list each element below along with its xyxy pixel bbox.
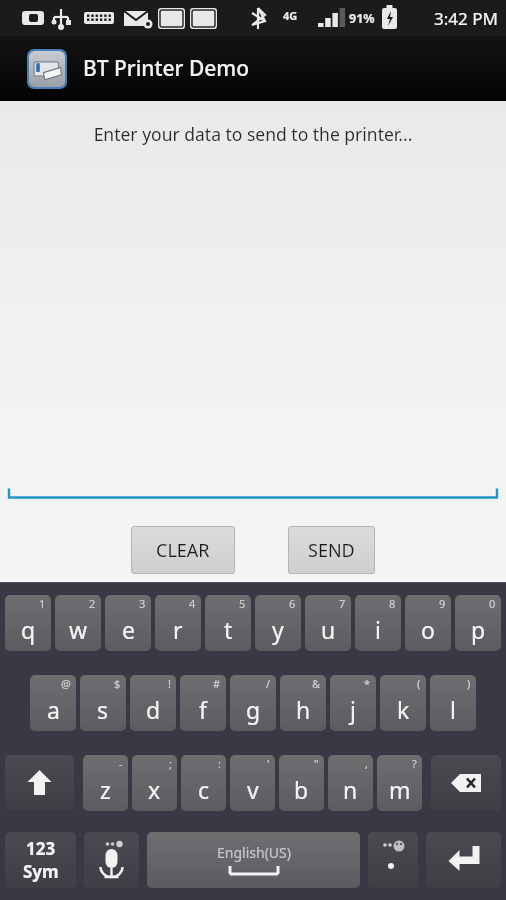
staticText: r <box>173 614 183 645</box>
staticText: c <box>198 774 210 805</box>
staticText: 2 <box>89 596 96 611</box>
staticText: ) <box>467 676 471 691</box>
staticText: t <box>224 614 233 645</box>
staticText: 6 <box>289 596 296 611</box>
staticText: f <box>199 694 207 725</box>
staticText: English(US) <box>217 843 291 862</box>
button[interactable]: ! <box>130 675 176 731</box>
staticText: l <box>450 694 456 725</box>
staticText: " <box>314 756 319 771</box>
button[interactable]: Symbols <box>5 832 76 888</box>
button[interactable]: ? <box>377 755 422 811</box>
staticText: u <box>321 614 336 645</box>
staticText: 4G <box>283 8 298 23</box>
staticText: q <box>21 614 36 645</box>
staticText: a <box>47 694 60 725</box>
staticText: ? <box>412 756 417 771</box>
staticText: v <box>247 774 259 805</box>
button[interactable]: 5 <box>205 595 251 651</box>
button[interactable]: Enter <box>426 832 501 888</box>
button[interactable]: 2 <box>55 595 101 651</box>
button[interactable]: ) <box>430 675 476 731</box>
staticText: e <box>122 614 135 645</box>
staticText: d <box>146 694 161 725</box>
staticText: g <box>246 694 261 725</box>
staticText: k <box>397 694 410 725</box>
button[interactable]: ; <box>132 755 177 811</box>
button[interactable]: 3 <box>105 595 151 651</box>
button[interactable]: Shift <box>5 755 74 811</box>
staticText: $ <box>114 676 121 691</box>
staticText: y <box>272 614 284 645</box>
staticText: o <box>421 614 435 645</box>
staticText: 3:42 PM <box>434 7 498 30</box>
staticText: m <box>389 774 411 805</box>
button[interactable]: ' <box>230 755 275 811</box>
staticText: BT Printer Demo <box>83 54 250 83</box>
staticText: z <box>100 774 111 805</box>
button[interactable]: * <box>330 675 376 731</box>
staticText: , <box>365 756 368 771</box>
staticText: 91% <box>349 10 375 27</box>
button[interactable]: CLEAR <box>131 526 235 574</box>
staticText: * <box>364 676 371 691</box>
button[interactable]: 8 <box>355 595 401 651</box>
button[interactable]: / <box>230 675 276 731</box>
staticText: x <box>148 774 161 805</box>
staticText: h <box>296 694 311 725</box>
button[interactable]: English(US) <box>147 832 360 888</box>
staticText: & <box>312 676 321 691</box>
staticText: : <box>218 756 221 771</box>
staticText: Sym <box>23 860 59 883</box>
staticText: ! <box>168 676 171 691</box>
button[interactable]: 0 <box>455 595 501 651</box>
button[interactable]: Period and emoji <box>368 832 418 888</box>
staticText: i <box>375 614 381 645</box>
button[interactable]: , <box>328 755 373 811</box>
button[interactable]: SEND <box>288 526 375 574</box>
staticText: j <box>350 694 356 725</box>
button[interactable]: Voice input <box>84 832 139 888</box>
button[interactable]: # <box>180 675 226 731</box>
staticText: Enter your data to send to the printer..… <box>0 122 506 146</box>
staticText: 5 <box>239 596 246 611</box>
staticText: 4 <box>189 596 196 611</box>
staticText: n <box>343 774 358 805</box>
staticText: p <box>471 614 486 645</box>
staticText: 1 <box>39 596 46 611</box>
staticText: @ <box>61 676 71 691</box>
button[interactable]: @ <box>30 675 76 731</box>
button[interactable]: 6 <box>255 595 301 651</box>
staticText: ( <box>417 676 421 691</box>
staticText: SEND <box>308 538 355 563</box>
button[interactable]: 1 <box>5 595 51 651</box>
staticText: # <box>213 676 221 691</box>
staticText: 3 <box>139 596 146 611</box>
staticText: 9 <box>439 596 446 611</box>
button[interactable]: $ <box>80 675 126 731</box>
staticText: ' <box>267 756 270 771</box>
button[interactable]: : <box>181 755 226 811</box>
staticText: / <box>266 676 271 691</box>
button[interactable]: ( <box>380 675 426 731</box>
staticText: CLEAR <box>156 538 210 563</box>
button[interactable]: 7 <box>305 595 351 651</box>
button[interactable]: - <box>83 755 128 811</box>
staticText: 0 <box>489 596 496 611</box>
button[interactable]: & <box>280 675 326 731</box>
staticText: ; <box>169 756 172 771</box>
button[interactable]: " <box>279 755 324 811</box>
staticText: b <box>294 774 309 805</box>
button[interactable]: 4 <box>155 595 201 651</box>
button[interactable]: Backspace <box>431 755 501 811</box>
button[interactable]: 9 <box>405 595 451 651</box>
staticText: 8 <box>389 596 396 611</box>
staticText: 7 <box>339 596 346 611</box>
staticText: w <box>69 614 88 645</box>
staticText: s <box>97 694 109 725</box>
staticText: 123 <box>26 837 56 860</box>
staticText: - <box>119 756 123 771</box>
